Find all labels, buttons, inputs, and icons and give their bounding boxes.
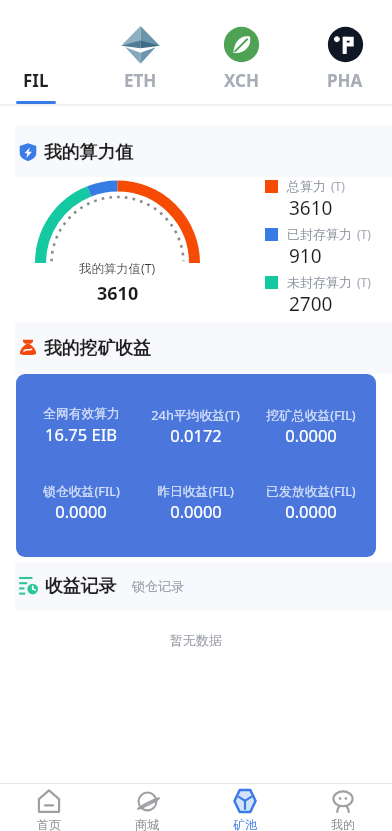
button[interactable]: 我的 [294, 784, 392, 831]
staticText: 全网有效算力 [43, 406, 120, 422]
staticText: 收益记录 [45, 575, 117, 597]
staticText: 我的算力值 [44, 141, 133, 163]
staticText: (T) [357, 226, 371, 242]
staticText: 商城 [135, 817, 159, 831]
button[interactable]: 首页 [0, 784, 98, 831]
staticText: 0.0000 [285, 500, 337, 522]
staticText: 2700 [289, 291, 333, 317]
staticText: 锁仓收益(FIL) [43, 482, 120, 499]
staticText: 0.0000 [55, 500, 107, 522]
button[interactable]: 锁仓记录 [132, 578, 184, 594]
staticText: PHA [327, 69, 363, 92]
staticText: 16.75 EIB [45, 423, 117, 445]
staticText: 暂无数据 [170, 632, 222, 648]
staticText: 我的算力值(T) [79, 260, 156, 277]
staticText: 首页 [37, 817, 61, 831]
staticText: XCH [224, 69, 259, 92]
staticText: FIL [23, 69, 49, 92]
staticText: 0.0000 [170, 500, 222, 522]
staticText: 24h平均收益(T) [151, 406, 240, 423]
staticText: 锁仓记录 [132, 578, 184, 594]
button[interactable]: 矿池 [196, 784, 294, 831]
staticText: 3610 [97, 281, 139, 306]
staticText: 昨日收益(FIL) [157, 482, 234, 499]
staticText: 矿池 [233, 817, 257, 831]
staticText: 3610 [289, 195, 333, 221]
button[interactable]: XCH [201, 0, 281, 106]
staticText: 总算力 [287, 178, 326, 194]
staticText: 0.0172 [170, 424, 222, 446]
staticText: 0.0000 [285, 424, 337, 446]
button[interactable]: 商城 [98, 784, 196, 831]
staticText: 未封存算力 [287, 274, 352, 290]
staticText: 我的 [331, 817, 355, 831]
button[interactable]: 收益记录 [45, 575, 117, 597]
button[interactable]: ETH [100, 0, 180, 106]
staticText: 910 [289, 243, 322, 269]
staticText: 已封存算力 [287, 226, 352, 242]
staticText: 已发放收益(FIL) [266, 482, 356, 499]
staticText: (T) [357, 274, 371, 290]
staticText: (T) [331, 178, 345, 194]
button[interactable]: PHA [305, 0, 385, 106]
button[interactable]: FIL [0, 0, 72, 106]
staticText: 我的挖矿收益 [44, 337, 151, 359]
staticText: 挖矿总收益(FIL) [266, 406, 356, 423]
staticText: ETH [124, 69, 157, 92]
